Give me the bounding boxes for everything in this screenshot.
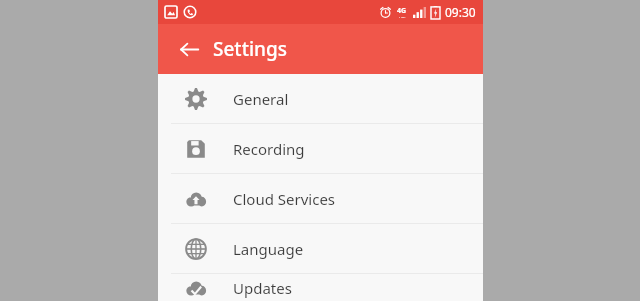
staticText: 09:30 xyxy=(445,4,476,20)
button[interactable]: Back xyxy=(172,32,206,66)
staticText: Cloud Services xyxy=(233,189,336,209)
button[interactable]: Cloud Services xyxy=(158,174,483,223)
button[interactable]: Updates xyxy=(158,274,483,301)
staticText: LTE xyxy=(399,16,406,18)
staticText: Language xyxy=(233,239,304,259)
button[interactable]: General xyxy=(158,74,483,123)
button[interactable]: Recording xyxy=(158,124,483,173)
staticText: Settings xyxy=(213,36,287,62)
staticText: 4G xyxy=(397,6,407,16)
staticText: Updates xyxy=(233,278,292,298)
staticText: Recording xyxy=(233,139,305,159)
button[interactable]: Language xyxy=(158,224,483,273)
staticText: General xyxy=(233,89,289,109)
